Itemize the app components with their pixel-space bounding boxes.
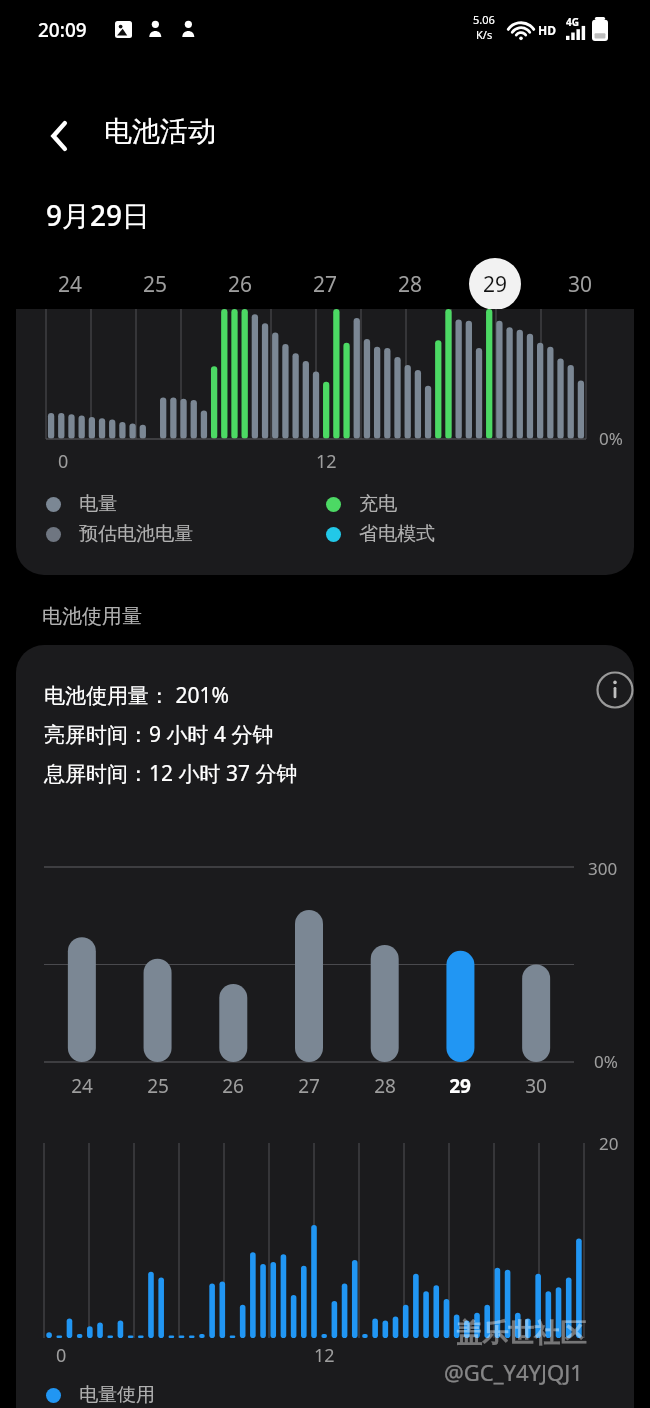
- staticText: 29: [483, 270, 508, 299]
- staticText: 5.06: [473, 12, 495, 27]
- staticText: 26: [228, 270, 253, 299]
- button[interactable]: 30: [554, 258, 606, 310]
- staticText: 20:09: [38, 17, 87, 43]
- staticText: 28: [374, 1073, 396, 1099]
- staticText: 12: [316, 449, 337, 474]
- button[interactable]: 25: [129, 258, 181, 310]
- staticText: 20: [599, 1132, 619, 1155]
- button[interactable]: Info: [582, 657, 634, 723]
- staticText: 27: [313, 270, 338, 299]
- staticText: 25: [143, 270, 168, 299]
- staticText: 盖乐世社区: [456, 1317, 586, 1350]
- button[interactable]: 26: [214, 258, 266, 310]
- staticText: 预估电池电量: [79, 522, 193, 546]
- staticText: 28: [398, 270, 423, 299]
- staticText: 29: [449, 1073, 471, 1099]
- staticText: 电量使用: [79, 1383, 155, 1407]
- button[interactable]: 0%: [16, 309, 634, 575]
- staticText: 30: [525, 1073, 547, 1099]
- staticText: 24: [71, 1073, 93, 1099]
- staticText: 息屏时间：12 小时 37 分钟: [44, 759, 298, 788]
- staticText: 12: [314, 1343, 335, 1368]
- button[interactable]: 28: [384, 258, 436, 310]
- staticText: 省电模式: [359, 522, 435, 546]
- staticText: 电池使用量： 201%: [44, 681, 229, 710]
- button[interactable]: 24: [44, 258, 96, 310]
- staticText: 充电: [359, 492, 397, 516]
- staticText: 0: [56, 1343, 67, 1368]
- staticText: 27: [298, 1073, 320, 1099]
- staticText: 电量: [79, 492, 117, 516]
- staticText: 25: [147, 1073, 169, 1099]
- staticText: 4G: [566, 15, 579, 29]
- staticText: K/s: [476, 27, 493, 42]
- button[interactable]: Back: [30, 108, 86, 164]
- button[interactable]: 省电模式: [326, 522, 435, 546]
- staticText: 0%: [599, 427, 623, 450]
- button[interactable]: 电量使用: [46, 1383, 155, 1407]
- staticText: 30: [568, 270, 593, 299]
- staticText: 电池使用量: [42, 604, 142, 629]
- button[interactable]: 29: [469, 258, 521, 310]
- button[interactable]: 27: [299, 258, 351, 310]
- staticText: 亮屏时间：9 小时 4 分钟: [44, 720, 274, 749]
- staticText: HD: [538, 22, 556, 38]
- staticText: 24: [58, 270, 83, 299]
- staticText: @GC_Y4YJQJ1: [444, 1357, 583, 1387]
- button[interactable]: 电量: [46, 492, 117, 516]
- staticText: 0: [58, 449, 69, 474]
- staticText: 电池活动: [104, 114, 216, 149]
- staticText: 300: [588, 857, 618, 880]
- button[interactable]: 充电: [326, 492, 397, 516]
- button[interactable]: 预估电池电量: [46, 522, 193, 546]
- staticText: 26: [222, 1073, 244, 1099]
- staticText: 0%: [594, 1050, 618, 1073]
- staticText: 9月29日: [46, 196, 151, 234]
